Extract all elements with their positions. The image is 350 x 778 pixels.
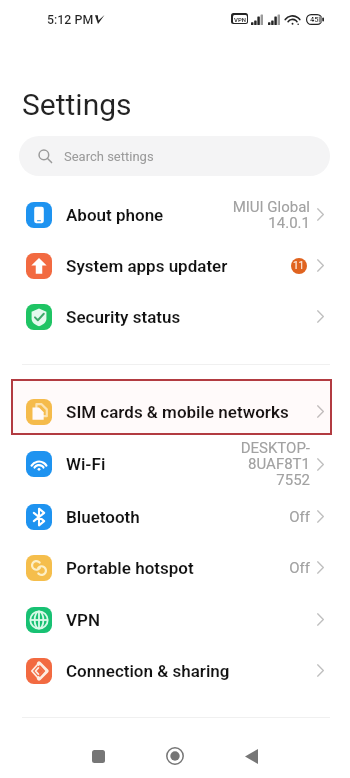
button[interactable]: Connection & sharing	[0, 645, 350, 696]
staticText: Off	[289, 508, 310, 526]
button[interactable]: Recent apps	[60, 726, 137, 778]
button[interactable]: Search settings	[19, 136, 330, 176]
staticText: Bluetooth	[66, 507, 140, 527]
staticText: 45	[310, 15, 319, 24]
staticText: Wi-Fi	[66, 454, 106, 474]
staticText: System apps updater	[66, 256, 228, 276]
button[interactable]: Back	[213, 726, 289, 778]
staticText: Security status	[66, 307, 181, 327]
staticText: Search settings	[64, 149, 154, 164]
staticText: VPN	[66, 610, 100, 630]
staticText: DESKTOP- 8UAF8T1 7552	[240, 439, 310, 489]
button[interactable]: Bluetooth	[0, 491, 350, 542]
staticText: VPN	[234, 16, 247, 23]
button[interactable]: VPN	[0, 594, 350, 645]
staticText: Off	[289, 559, 310, 577]
staticText: 11	[293, 260, 305, 272]
button[interactable]: About phone	[0, 189, 350, 240]
staticText: SIM cards & mobile networks	[66, 402, 289, 422]
staticText: 5:12 PM	[47, 12, 94, 27]
staticText: MIUI Global 14.0.1	[232, 198, 310, 232]
button[interactable]: Portable hotspot	[0, 542, 350, 593]
button[interactable]: Security status	[0, 291, 350, 342]
button[interactable]: Wi-Fi	[0, 437, 350, 491]
button[interactable]: System apps updater	[0, 240, 350, 291]
staticText: Settings	[22, 87, 132, 122]
staticText: Portable hotspot	[66, 558, 194, 578]
button[interactable]: Home	[137, 726, 213, 778]
staticText: Connection & sharing	[66, 661, 230, 681]
staticText: About phone	[66, 205, 164, 225]
button[interactable]: SIM cards & mobile networks	[0, 386, 350, 437]
